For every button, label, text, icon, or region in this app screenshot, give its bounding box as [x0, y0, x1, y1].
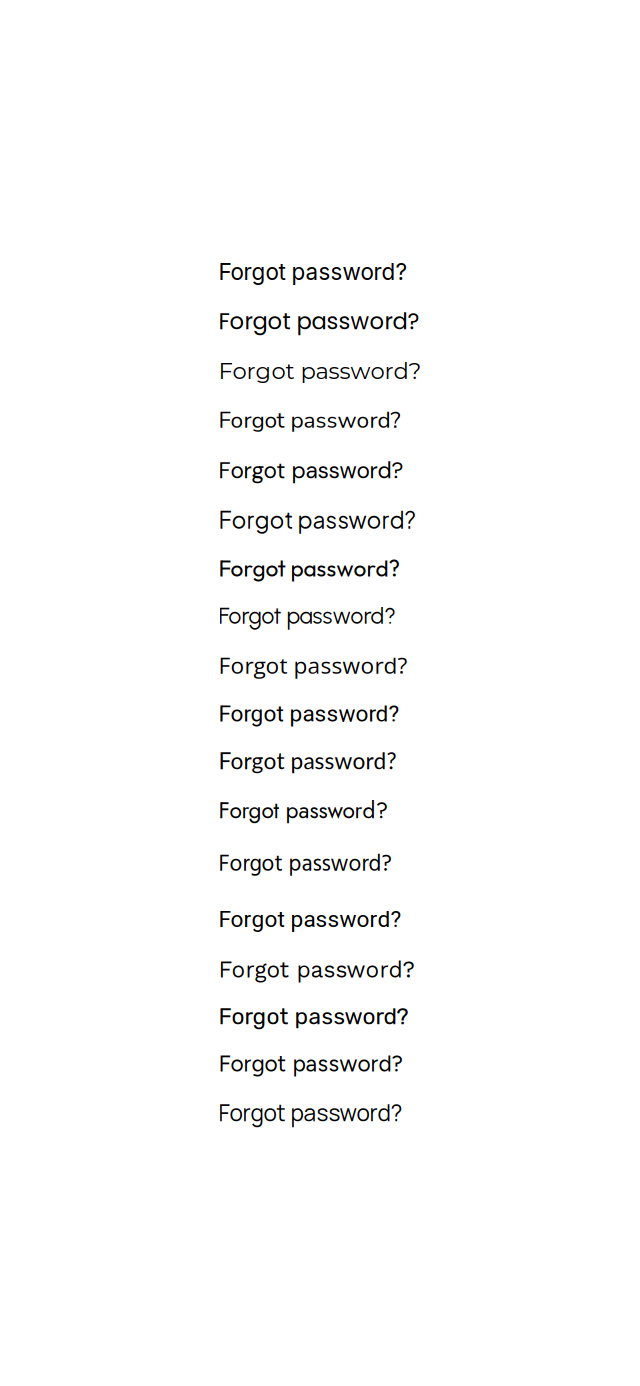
staticText: Forgot password? [218, 1003, 408, 1030]
staticText: Forgot password? [218, 700, 399, 727]
staticText: Forgot password? [218, 505, 415, 534]
staticText: Forgot password? [218, 1097, 402, 1128]
staticText: Forgot password? [218, 602, 395, 629]
staticText: Forgot password? [218, 649, 407, 680]
staticText: Forgot password? [218, 1050, 402, 1077]
staticText: Forgot password? [218, 305, 419, 337]
staticText: Forgot password? [218, 405, 400, 436]
staticText: Forgot password? [218, 456, 403, 485]
staticText: Forgot password? [218, 554, 399, 582]
staticText: Forgot password? [218, 794, 388, 827]
staticText: Forgot password? [218, 747, 396, 774]
staticText: Forgot password? [218, 847, 391, 883]
staticText: Forgot password? [218, 258, 407, 285]
staticText: Forgot password? [218, 903, 401, 936]
staticText: Forgot password? [218, 357, 421, 385]
staticText: Forgot password? [218, 956, 414, 983]
